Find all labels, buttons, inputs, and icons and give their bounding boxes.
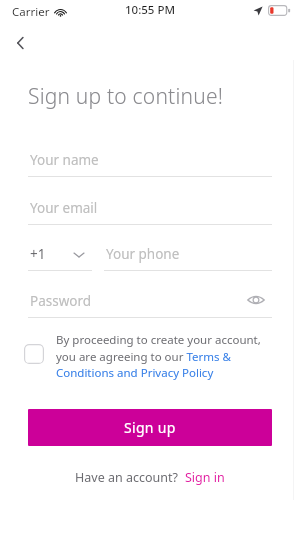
button[interactable]: Sign up (28, 409, 272, 446)
button[interactable] (28, 140, 272, 177)
staticText: By proceeding to create your account, yo… (56, 332, 276, 380)
button[interactable] (28, 188, 272, 225)
staticText: Sign in (185, 469, 225, 486)
staticText: Carrier (12, 4, 50, 20)
button[interactable]: +1 (28, 234, 92, 271)
staticText: Your name (30, 151, 99, 169)
staticText: Your phone (106, 245, 180, 263)
staticText: +1 (30, 245, 46, 263)
staticText: Have an account? (75, 469, 178, 486)
staticText: Sign up (124, 418, 176, 437)
button[interactable] (104, 234, 272, 271)
button[interactable]: Show password (242, 286, 270, 314)
button[interactable]: By proceeding to create your account, yo… (24, 332, 276, 380)
staticText: Sign up to continue! (28, 82, 224, 111)
button[interactable]: Back (4, 26, 38, 60)
staticText: Your email (30, 199, 98, 217)
staticText: 10:55 PM (125, 2, 176, 18)
button[interactable]: Sign in (185, 469, 225, 486)
button[interactable] (28, 281, 240, 318)
staticText: Password (30, 292, 92, 310)
